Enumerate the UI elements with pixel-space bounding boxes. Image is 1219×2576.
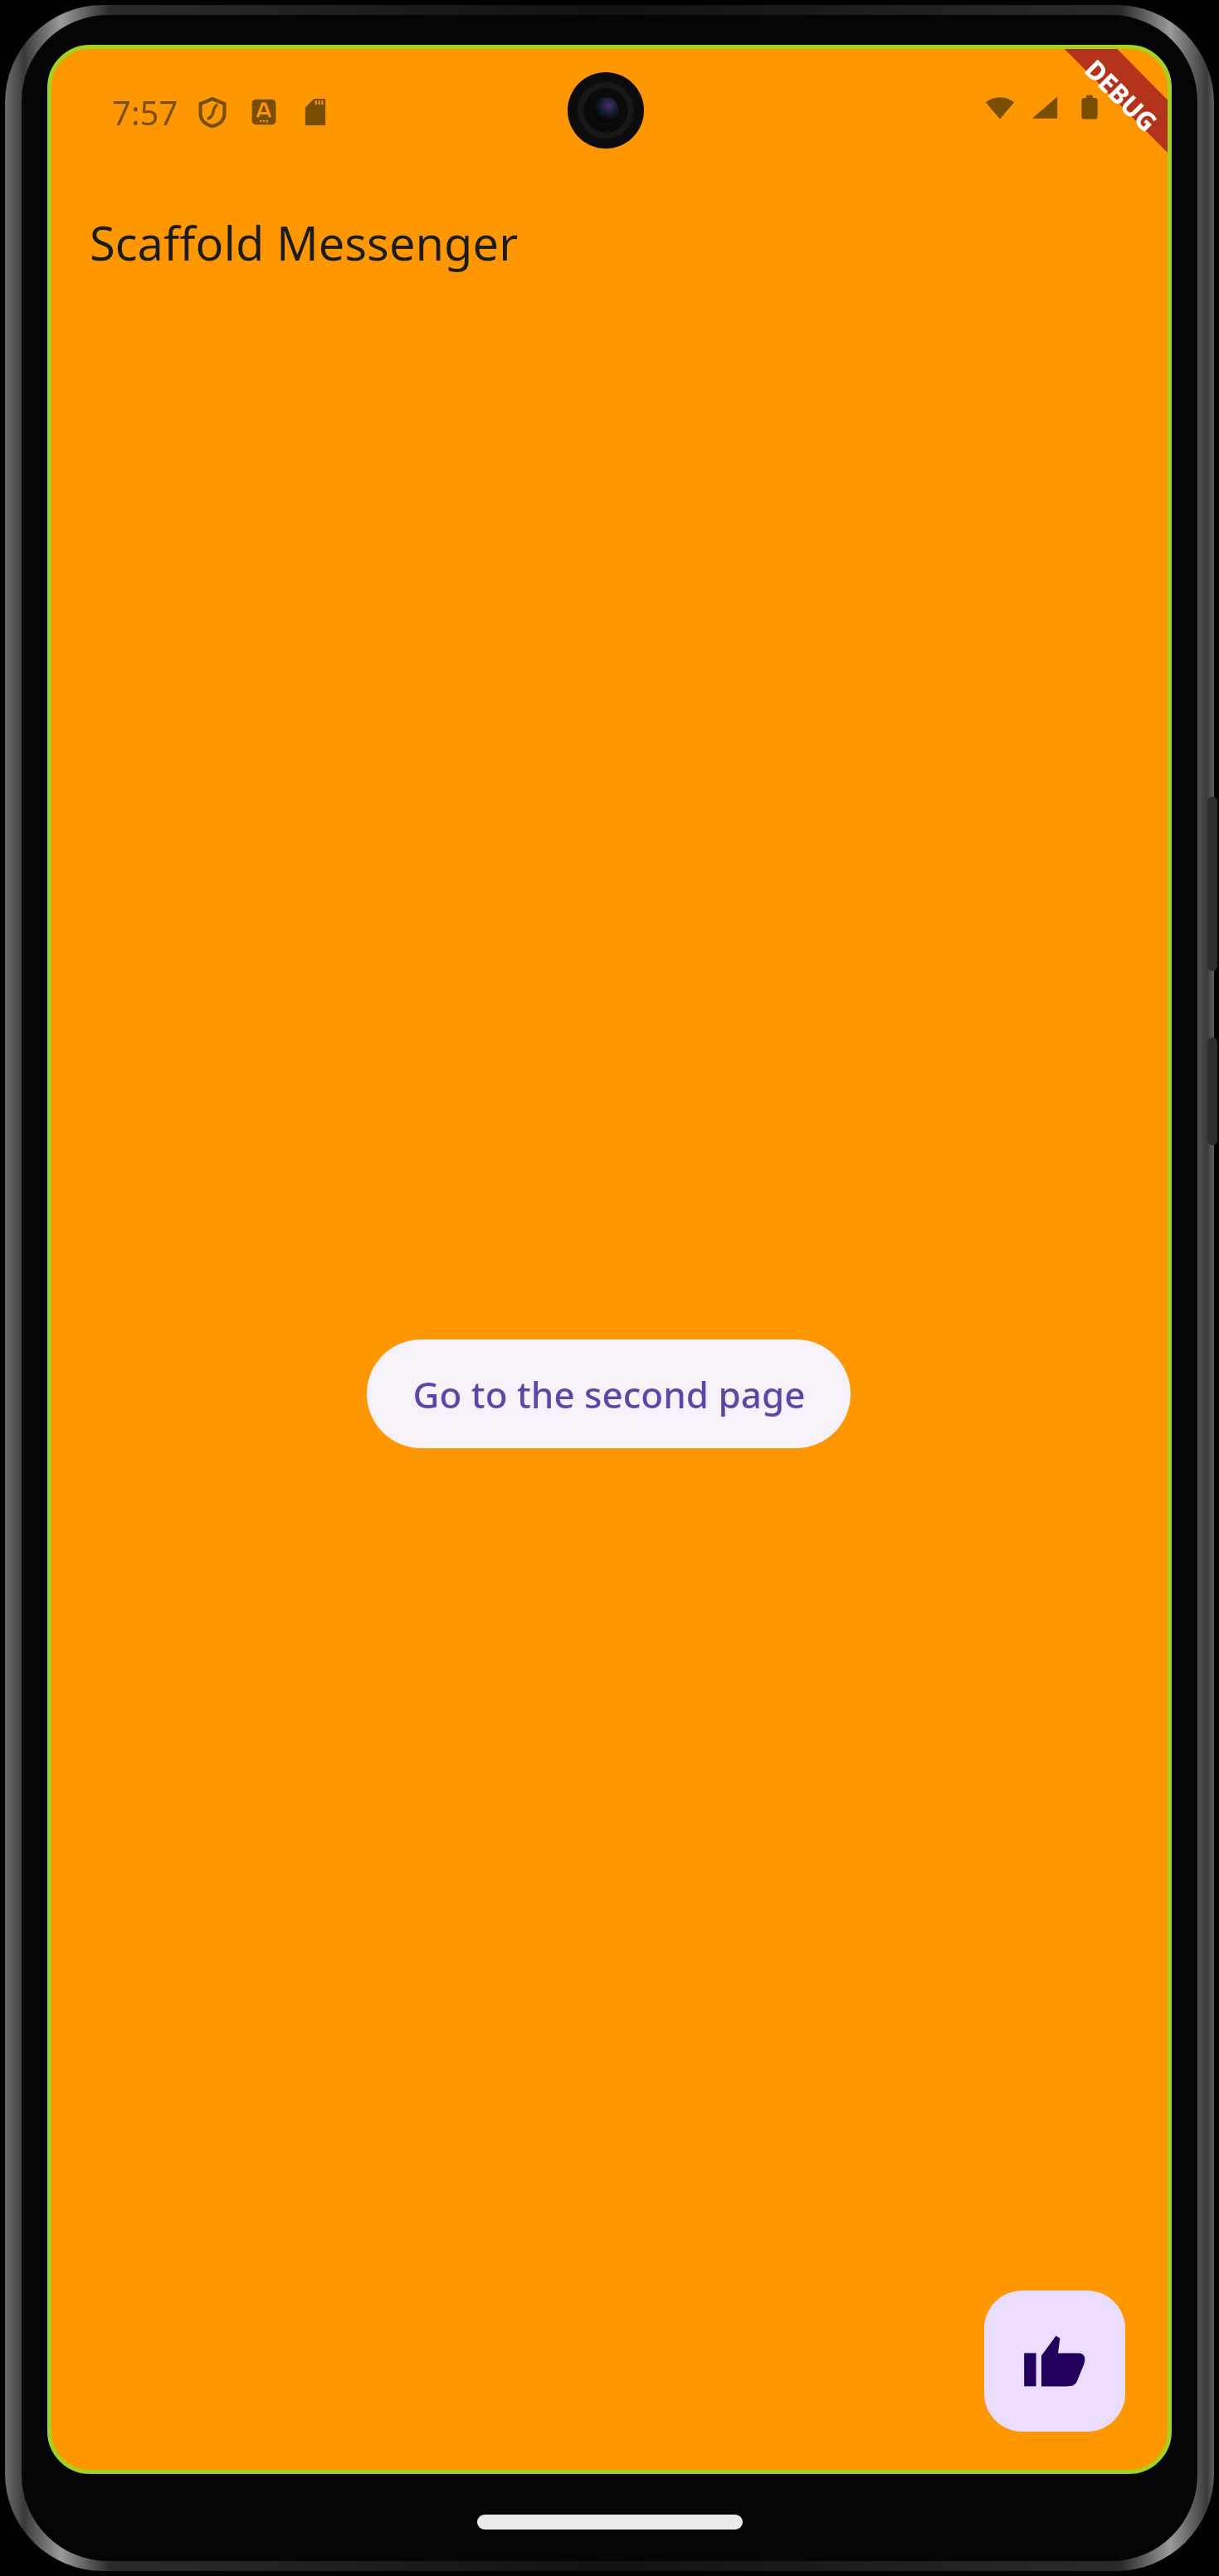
staticText: 7:57: [112, 90, 178, 134]
staticText: Scaffold Messenger: [90, 211, 519, 274]
staticText: DEBUG: [1078, 52, 1165, 139]
button[interactable]: Go to the second page: [367, 1339, 851, 1448]
staticText: Go to the second page: [412, 1369, 806, 1419]
button[interactable]: Like: [984, 2291, 1125, 2432]
